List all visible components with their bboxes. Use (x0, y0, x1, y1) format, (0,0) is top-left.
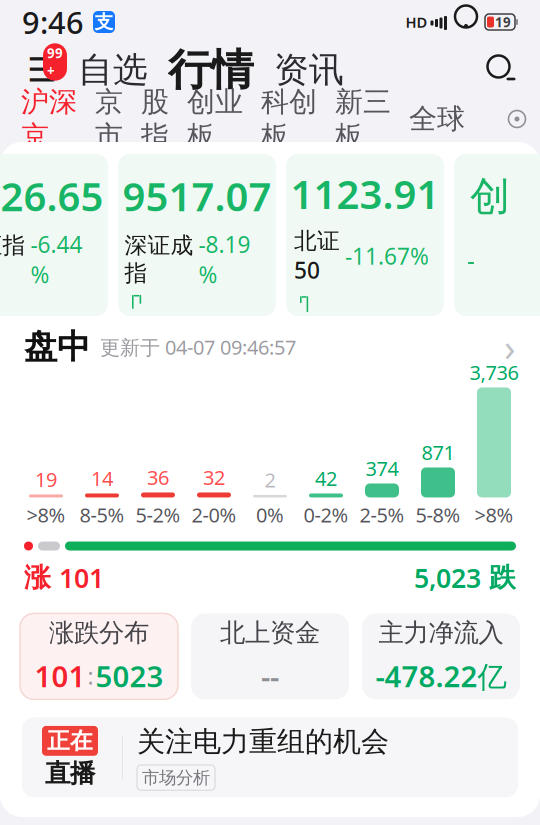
staticText: -- (261, 656, 279, 695)
staticText: 深证成指 (124, 231, 193, 287)
staticText: 更新于 04-07 09:46:57 (100, 334, 296, 360)
staticText: -8.19% (198, 229, 250, 289)
staticText: -478.22亿 (375, 656, 506, 695)
staticText: 5,023 (414, 560, 481, 595)
staticText: 1123.91 (290, 167, 439, 220)
staticText: 9517.07 (122, 169, 271, 222)
staticText: 2-5% (359, 501, 404, 528)
staticText: 支 (94, 10, 113, 33)
button[interactable]: 沪深京 (12, 99, 86, 139)
button[interactable]: 主力净流入 (362, 613, 520, 699)
staticText: 自选 (78, 49, 148, 91)
staticText: 沪深京 (21, 85, 77, 153)
button[interactable]: 京市 (86, 99, 132, 139)
staticText: 5023 (95, 656, 163, 695)
staticText: 北上资金 (220, 617, 320, 648)
staticText: 36 (147, 464, 169, 490)
staticText: 全球 (409, 102, 465, 136)
staticText: 北证50 (294, 227, 340, 285)
staticText: 资讯 (274, 49, 344, 91)
staticText: 跌 (481, 561, 516, 594)
staticText: 19 (495, 13, 511, 31)
staticText: 3,736 (469, 359, 518, 385)
staticText: : (87, 661, 93, 691)
button[interactable]: 科创板 (252, 99, 326, 139)
staticText: 99+ (47, 44, 63, 80)
staticText: 市场分析 (142, 767, 210, 788)
staticText: -6.44% (30, 229, 82, 289)
button[interactable]: 3126.65 (0, 154, 108, 316)
staticText: 5-2% (135, 501, 180, 528)
button[interactable]: 新三板 (326, 99, 400, 139)
button[interactable]: 菜单 (16, 47, 68, 93)
staticText: 871 (421, 439, 454, 465)
button[interactable]: 正在 (22, 717, 518, 797)
staticText: 19 (35, 466, 57, 492)
button[interactable]: 创业板 (178, 99, 252, 139)
staticText: 直播 (45, 758, 95, 789)
staticText: 创业板 (187, 85, 243, 153)
staticText: 涨跌分布 (49, 617, 149, 648)
staticText: 股指 (141, 85, 169, 153)
button[interactable]: 涨跌分布 (20, 613, 178, 699)
staticText: › (504, 322, 516, 372)
staticText: 374 (365, 455, 398, 481)
staticText: 42 (315, 465, 337, 491)
staticText: 京市 (95, 85, 123, 153)
staticText: 创 (470, 172, 510, 221)
staticText: 8-5% (79, 501, 124, 528)
button[interactable]: 全球 (400, 99, 474, 139)
staticText: ☰ (27, 51, 57, 89)
staticText: 2-0% (191, 501, 236, 528)
staticText: 0-2% (303, 501, 348, 528)
button[interactable]: 9517.07 (118, 154, 276, 316)
staticText: 101 (59, 560, 104, 595)
staticText: 盘中 (24, 326, 90, 367)
staticText: 上证指数 (0, 231, 25, 287)
button[interactable]: 创 (454, 154, 540, 316)
staticText: 5-8% (415, 501, 460, 528)
staticText: 101 (34, 656, 85, 695)
staticText: >8% (474, 501, 513, 528)
staticText: 2 (264, 466, 275, 493)
button[interactable]: 盘中 (0, 330, 540, 364)
staticText: 0% (256, 501, 284, 528)
staticText: 行情 (168, 44, 254, 96)
staticText: >8% (26, 501, 65, 528)
staticText: 3126.65 (0, 169, 103, 222)
button[interactable]: 股指 (132, 99, 178, 139)
staticText: -11.67% (345, 241, 429, 271)
staticText: 新三板 (335, 85, 391, 153)
staticText: 关注电力重组的机会 (137, 725, 389, 759)
button[interactable]: 自选 (68, 49, 158, 91)
button[interactable]: 北上资金 (191, 613, 349, 699)
staticText: 9:46 (22, 2, 84, 42)
staticText: 正在 (47, 727, 93, 755)
button[interactable]: 1123.91 (286, 154, 444, 316)
staticText: 14 (91, 465, 113, 491)
staticText: 主力净流入 (378, 617, 503, 648)
staticText: HD (405, 12, 427, 32)
button[interactable]: 搜索 (480, 48, 524, 92)
button[interactable]: 设置 (500, 99, 534, 139)
button[interactable]: 行情 (158, 44, 264, 96)
staticText: 涨 (24, 561, 59, 594)
staticText: 32 (203, 464, 225, 490)
button[interactable]: 资讯 (264, 49, 354, 91)
staticText: 科创板 (261, 85, 317, 153)
